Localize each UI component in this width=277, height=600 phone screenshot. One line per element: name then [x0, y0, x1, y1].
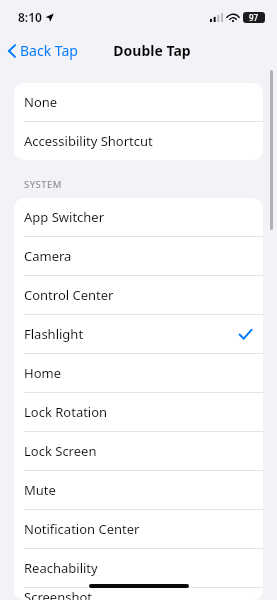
button[interactable]: Accessibility Shortcut: [14, 122, 263, 160]
staticText: Mute: [24, 481, 56, 499]
button[interactable]: Mute: [14, 471, 263, 510]
staticText: 97: [249, 12, 259, 23]
button[interactable]: Screenshot: [14, 588, 263, 600]
staticText: Lock Rotation: [24, 403, 108, 421]
staticText: Notification Center: [24, 520, 140, 538]
staticText: Double Tap: [113, 41, 191, 60]
button[interactable]: Home: [14, 354, 263, 393]
staticText: Back Tap: [20, 41, 78, 60]
staticText: Flashlight: [24, 325, 84, 343]
staticText: Screenshot: [24, 588, 93, 600]
button[interactable]: Camera: [14, 237, 263, 276]
staticText: 8:10: [18, 9, 42, 25]
staticText: Camera: [24, 247, 72, 265]
staticText: Control Center: [24, 286, 114, 304]
staticText: App Switcher: [24, 208, 105, 226]
button[interactable]: Reachability: [14, 549, 263, 588]
button[interactable]: Lock Screen: [14, 432, 263, 471]
button[interactable]: App Switcher: [14, 198, 263, 237]
staticText: Accessibility Shortcut: [24, 132, 153, 150]
button[interactable]: Back Tap: [0, 37, 86, 64]
staticText: Home: [24, 364, 61, 382]
button[interactable]: None: [14, 83, 263, 122]
button[interactable]: Flashlight: [14, 315, 263, 354]
staticText: SYSTEM: [24, 178, 62, 191]
button[interactable]: Notification Center: [14, 510, 263, 549]
staticText: None: [24, 93, 58, 111]
staticText: Reachability: [24, 559, 98, 577]
other: Selected: [239, 329, 252, 340]
staticText: Lock Screen: [24, 442, 97, 460]
button[interactable]: Control Center: [14, 276, 263, 315]
button[interactable]: Lock Rotation: [14, 393, 263, 432]
